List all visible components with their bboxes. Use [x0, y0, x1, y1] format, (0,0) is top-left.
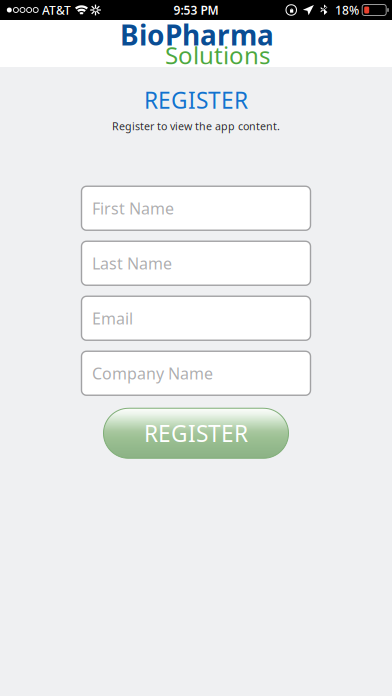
staticText: Last Name — [92, 253, 172, 274]
button[interactable]: REGISTER — [103, 408, 288, 458]
staticText: Company Name — [92, 363, 213, 384]
button[interactable]: Email — [81, 296, 310, 340]
staticText: Register to view the app content. — [112, 119, 280, 133]
staticText: REGISTER — [144, 418, 248, 448]
staticText: AT&T — [42, 2, 71, 18]
staticText: First Name — [92, 198, 174, 219]
staticText: Solutions — [165, 39, 270, 71]
button[interactable]: Company Name — [81, 351, 310, 395]
staticText: 18% — [335, 2, 359, 18]
button[interactable]: First Name — [81, 186, 310, 230]
staticText: REGISTER — [144, 85, 248, 115]
button[interactable]: Last Name — [81, 241, 310, 285]
staticText: BioPharma — [120, 16, 274, 53]
staticText: 9:53 PM — [173, 2, 218, 18]
staticText: Email — [92, 308, 133, 329]
